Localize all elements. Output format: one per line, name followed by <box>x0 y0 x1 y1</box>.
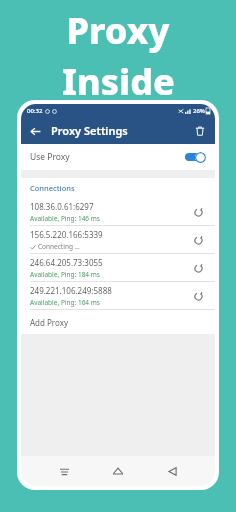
staticText: 249.221.106.249:5888 <box>30 285 112 296</box>
staticText: 108.36.0.61:6297 <box>30 201 94 212</box>
button[interactable]: Refresh <box>190 204 206 220</box>
button[interactable]: Use Proxy <box>21 144 215 170</box>
button[interactable]: 156.5.220.166:5339 <box>21 226 215 254</box>
button[interactable]: Delete <box>190 121 210 141</box>
button[interactable]: Refresh <box>190 232 206 248</box>
button[interactable]: 246.64.205.73:3055 <box>21 254 215 282</box>
staticText: Add Proxy <box>30 317 69 328</box>
button[interactable]: Back <box>161 460 183 482</box>
staticText: 246.64.205.73:3055 <box>30 257 103 268</box>
button[interactable]: 108.36.0.61:6297 <box>21 198 215 226</box>
button[interactable]: Refresh <box>190 288 206 304</box>
button[interactable]: Home <box>107 460 129 482</box>
button[interactable]: Add Proxy <box>21 310 215 334</box>
button[interactable]: 249.221.106.249:5888 <box>21 282 215 310</box>
staticText: 00:32 <box>27 107 43 115</box>
button[interactable]: Recents <box>53 460 75 482</box>
staticText: Available, Ping: 164 ms <box>30 298 100 307</box>
staticText: Connecting ... <box>38 242 80 251</box>
staticText: Connections <box>30 183 75 193</box>
staticText: 156.5.220.166:5339 <box>30 229 103 240</box>
staticText: Proxy Settings <box>51 123 128 138</box>
staticText: Available, Ping: 184 ms <box>30 270 100 279</box>
staticText: Available, Ping: 146 ms <box>30 214 100 223</box>
staticText: Proxy <box>66 6 170 55</box>
button[interactable]: Refresh <box>190 260 206 276</box>
staticText: 26% <box>193 107 205 115</box>
staticText: Use Proxy <box>30 151 70 163</box>
staticText: Inside <box>62 57 175 106</box>
button[interactable]: Back <box>25 121 45 141</box>
